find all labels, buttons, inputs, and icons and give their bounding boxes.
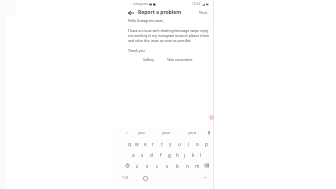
button[interactable]: e xyxy=(141,138,149,149)
staticText: v xyxy=(166,163,169,169)
button[interactable]: y xyxy=(166,138,175,149)
staticText: a xyxy=(132,152,135,158)
button[interactable]: Backspace xyxy=(202,160,211,171)
button[interactable]: ?123 xyxy=(121,175,130,181)
button[interactable]: g xyxy=(165,149,173,160)
staticText: Gallery xyxy=(143,57,155,61)
button[interactable]: you xyxy=(138,130,145,135)
button[interactable]: d xyxy=(147,149,156,160)
staticText: h xyxy=(176,152,179,158)
staticText: ?123 xyxy=(122,176,129,180)
staticText: o xyxy=(196,141,199,147)
staticText: y xyxy=(169,141,172,147)
staticText: t xyxy=(161,141,163,147)
button[interactable]: r xyxy=(149,138,157,149)
button[interactable]: k xyxy=(189,149,197,160)
button[interactable]: Take screenshot xyxy=(166,56,194,62)
staticText: s xyxy=(141,152,144,158)
button[interactable]: o xyxy=(193,138,202,149)
staticText: p xyxy=(205,141,208,147)
staticText: 12:34 xyxy=(192,2,200,6)
staticText: you xyxy=(138,130,145,135)
staticText: r xyxy=(152,141,154,147)
staticText: Thank you xyxy=(128,48,145,53)
button[interactable]: i xyxy=(184,138,193,149)
staticText: u xyxy=(178,141,181,147)
button[interactable]: n xyxy=(182,160,192,171)
button[interactable]: Emoji xyxy=(142,175,148,181)
button[interactable]: z xyxy=(132,160,142,171)
button[interactable]: . xyxy=(194,175,198,182)
button[interactable]: b xyxy=(172,160,182,171)
staticText: j xyxy=(184,152,186,158)
button[interactable]: Back xyxy=(127,9,135,17)
staticText: z xyxy=(136,163,139,169)
button[interactable]: a xyxy=(129,149,138,160)
staticText: ↵ xyxy=(204,176,208,180)
staticText: f xyxy=(160,152,162,158)
staticText: e xyxy=(144,141,147,147)
button[interactable]: Enter xyxy=(203,175,209,181)
staticText: yous xyxy=(188,130,197,135)
staticText: instagram xyxy=(133,2,148,6)
button[interactable]: c xyxy=(152,160,162,171)
staticText: b xyxy=(176,163,179,169)
button[interactable]: p xyxy=(202,138,211,149)
staticText: Next xyxy=(199,10,208,15)
staticText: Report a problem xyxy=(138,9,182,16)
button[interactable]: your xyxy=(162,130,171,135)
staticText: , xyxy=(136,176,138,181)
staticText: i xyxy=(188,141,190,147)
staticText: w xyxy=(135,141,139,147)
button[interactable]: Next xyxy=(198,9,209,16)
staticText: c xyxy=(156,163,159,169)
button[interactable]: w xyxy=(133,138,141,149)
staticText: g xyxy=(168,152,171,158)
staticText: l xyxy=(200,152,202,158)
staticText: . xyxy=(195,176,197,181)
button[interactable]: t xyxy=(157,138,166,149)
button[interactable]: v xyxy=(162,160,172,171)
staticText: x xyxy=(146,163,149,169)
button[interactable]: x xyxy=(142,160,152,171)
staticText: k xyxy=(192,152,195,158)
button[interactable]: j xyxy=(181,149,189,160)
button[interactable]: m xyxy=(192,160,202,171)
button[interactable]: yous xyxy=(188,130,197,135)
button[interactable]: q xyxy=(125,138,133,149)
button[interactable]: l xyxy=(197,149,205,160)
staticText: d xyxy=(150,152,153,158)
staticText: Take screenshot xyxy=(167,57,193,61)
staticText: your xyxy=(162,130,171,135)
staticText: n xyxy=(186,163,189,169)
button[interactable]: s xyxy=(138,149,147,160)
button[interactable]: , xyxy=(135,175,139,182)
staticText: Hello Instagram team, xyxy=(128,18,164,23)
staticText: > xyxy=(126,130,128,135)
staticText: q xyxy=(128,141,131,147)
button[interactable]: u xyxy=(175,138,184,149)
staticText: m xyxy=(195,163,200,169)
button[interactable]: f xyxy=(156,149,165,160)
button[interactable]: h xyxy=(173,149,181,160)
button[interactable]: Shift xyxy=(123,160,132,171)
button[interactable]: Gallery xyxy=(142,56,156,62)
staticText: I have an issue with chatting/message sw… xyxy=(128,28,210,43)
button[interactable]: Voice input xyxy=(206,130,211,135)
